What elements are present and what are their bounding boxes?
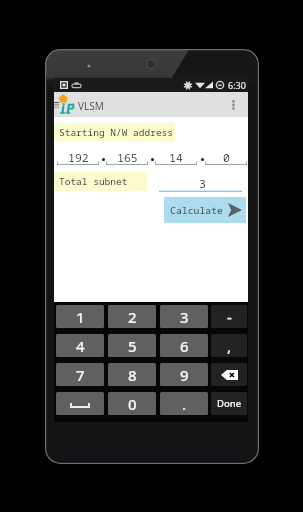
button[interactable]: 8 [108,363,156,386]
staticText: 3 [180,307,189,327]
button[interactable]: 3 [159,172,242,192]
staticText: 6:30 [228,79,246,91]
staticText: Done [217,397,242,410]
button[interactable]: 5 [108,334,156,357]
staticText: 4 [76,336,85,356]
staticText: 0 [223,150,230,166]
button[interactable]: Calculate [164,197,246,223]
staticText: 7 [76,365,85,385]
button[interactable]: , [211,334,247,357]
button[interactable]: del [211,363,247,386]
staticText: 1 [76,307,85,327]
button[interactable]: 9 [160,363,208,386]
staticText: 5 [128,336,137,356]
button[interactable]: 3 [160,305,208,328]
button[interactable]: 0 [108,392,156,415]
staticText: VLSM [78,99,104,113]
staticText: - [227,307,232,327]
button[interactable]: 1 [56,305,104,328]
button[interactable]: 192 [57,143,99,165]
staticText: 192 [68,150,89,166]
staticText: , [227,336,232,356]
staticText: . [182,394,187,414]
staticText: Calculate [170,204,223,217]
button[interactable]: More options [221,92,245,117]
staticText: 8 [128,365,137,385]
staticText: Starting N/W address [59,126,174,139]
button[interactable]: 165 [106,143,148,165]
button[interactable]: space [56,392,104,415]
staticText: 14 [169,150,183,166]
staticText: 0 [128,394,137,414]
staticText: Total subnet [59,175,128,188]
staticText: 3 [199,176,206,192]
button[interactable]: 0 [205,143,247,165]
button[interactable]: 7 [56,363,104,386]
staticText: 2 [128,307,137,327]
button[interactable]: Done [211,392,247,415]
button[interactable]: - [211,305,247,328]
button[interactable]: 6 [160,334,208,357]
button[interactable]: 4 [56,334,104,357]
staticText: 6 [180,336,189,356]
button[interactable]: 2 [108,305,156,328]
staticText: 9 [180,365,189,385]
staticText: 165 [117,150,138,166]
button[interactable]: . [160,392,208,415]
button[interactable]: 14 [155,143,197,165]
